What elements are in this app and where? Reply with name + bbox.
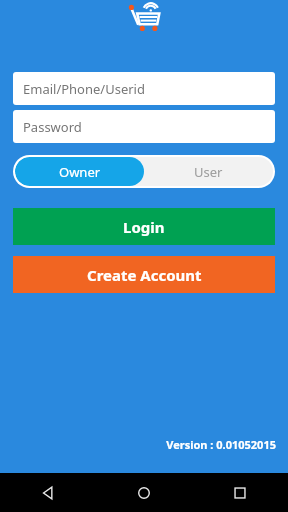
staticText: User xyxy=(194,163,223,181)
button[interactable]: Login xyxy=(13,208,275,245)
other: App logo xyxy=(127,2,161,32)
button[interactable]: Email/Phone/Userid xyxy=(13,72,275,105)
other: Recent apps xyxy=(232,485,248,501)
staticText: Owner xyxy=(59,163,101,181)
staticText: Password xyxy=(23,118,82,136)
button[interactable]: Owner xyxy=(15,157,144,186)
button[interactable]: Create Account xyxy=(13,256,275,293)
button[interactable]: Password xyxy=(13,110,275,143)
staticText: Create Account xyxy=(87,265,202,285)
staticText: Login xyxy=(123,217,165,237)
other: Back xyxy=(40,485,56,501)
staticText: Email/Phone/Userid xyxy=(23,80,145,98)
button[interactable]: User xyxy=(144,157,273,186)
other: Home xyxy=(136,485,152,501)
staticText: Version : 0.01052015 xyxy=(166,437,276,452)
